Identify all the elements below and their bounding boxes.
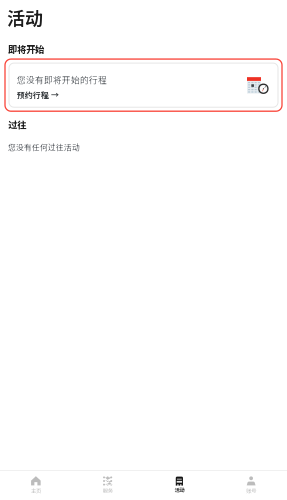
staticText: 账号 bbox=[246, 486, 256, 494]
staticText: 您没有任何过往活动 bbox=[8, 141, 80, 152]
staticText: 活动 bbox=[7, 4, 43, 30]
staticText: 您没有即将开始的行程 bbox=[17, 73, 107, 86]
button[interactable]: 服务 bbox=[72, 471, 144, 500]
staticText: 过往 bbox=[8, 118, 26, 131]
button[interactable]: 主页 bbox=[0, 471, 72, 500]
button[interactable]: 账号 bbox=[215, 471, 287, 500]
staticText: 服务 bbox=[103, 486, 113, 494]
staticText: 预约行程 → bbox=[17, 89, 59, 100]
button[interactable]: 活动 bbox=[143, 471, 215, 500]
staticText: 即将开始 bbox=[8, 42, 44, 56]
staticText: 主页 bbox=[31, 486, 41, 494]
button[interactable]: 您没有即将开始的行程 bbox=[0, 59, 287, 111]
staticText: 活动 bbox=[174, 486, 184, 494]
